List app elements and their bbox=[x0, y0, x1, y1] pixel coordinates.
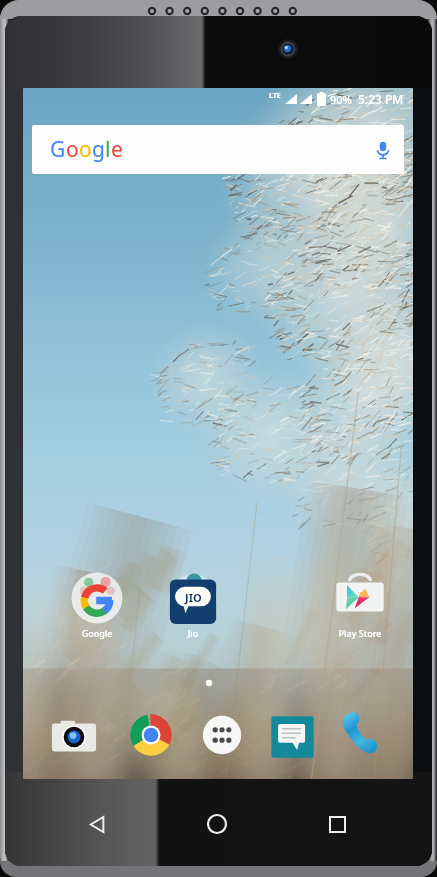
button[interactable]: Recent apps bbox=[313, 800, 361, 848]
staticText: LTE bbox=[269, 91, 281, 101]
button[interactable]: Home bbox=[193, 800, 241, 848]
staticText: l bbox=[105, 135, 111, 164]
staticText: e bbox=[111, 135, 123, 164]
staticText: o bbox=[79, 135, 92, 164]
button[interactable]: Camera bbox=[50, 713, 98, 761]
staticText: JIO bbox=[185, 590, 202, 605]
button[interactable]: G bbox=[32, 125, 404, 174]
button[interactable]: Back bbox=[73, 800, 121, 848]
staticText: o bbox=[66, 135, 79, 164]
button[interactable]: Play Store bbox=[320, 572, 400, 639]
button[interactable]: JIO bbox=[153, 572, 233, 639]
staticText: Jio bbox=[153, 627, 233, 639]
staticText: 90% bbox=[330, 92, 352, 107]
staticText: g bbox=[92, 135, 105, 164]
button[interactable]: Google bbox=[57, 572, 137, 639]
button[interactable]: Chrome bbox=[127, 711, 175, 759]
button[interactable]: Messages bbox=[268, 712, 316, 760]
button[interactable]: Apps bbox=[198, 711, 246, 759]
staticText: 5:23 PM bbox=[358, 91, 404, 107]
staticText: G bbox=[50, 135, 66, 164]
other: Front camera bbox=[5, 16, 432, 866]
button[interactable]: Phone bbox=[337, 709, 385, 757]
staticText: Play Store bbox=[320, 627, 400, 639]
button[interactable]: Voice search bbox=[375, 139, 391, 161]
staticText: Google bbox=[57, 627, 137, 639]
